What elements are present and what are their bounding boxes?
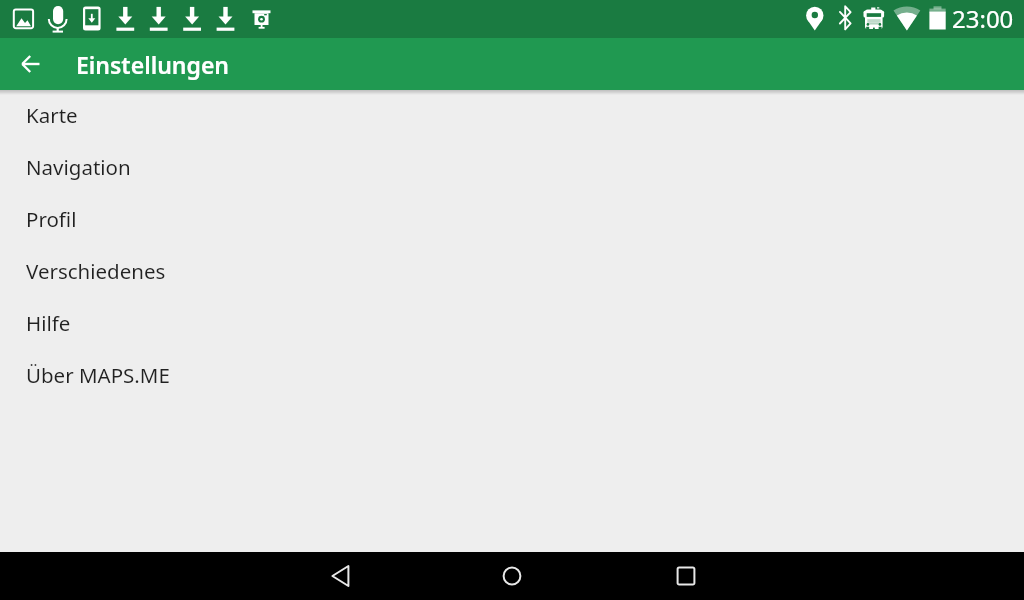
button[interactable]: Über MAPS.ME: [0, 350, 1024, 402]
staticText: 23:00: [952, 2, 1014, 35]
button[interactable]: Profil: [0, 194, 1024, 246]
staticText: Karte: [26, 101, 78, 129]
staticText: Einstellungen: [76, 49, 230, 80]
staticText: Verschiedenes: [26, 257, 166, 285]
button[interactable]: Karte: [0, 90, 1024, 142]
staticText: Über MAPS.ME: [26, 361, 170, 389]
button[interactable]: [317, 552, 365, 600]
button[interactable]: [7, 40, 55, 88]
staticText: Profil: [26, 205, 77, 233]
button[interactable]: Verschiedenes: [0, 246, 1024, 298]
button[interactable]: [662, 552, 710, 600]
button[interactable]: [488, 552, 536, 600]
button[interactable]: Hilfe: [0, 298, 1024, 350]
staticText: Navigation: [26, 153, 131, 181]
staticText: Hilfe: [26, 309, 71, 337]
button[interactable]: Navigation: [0, 142, 1024, 194]
